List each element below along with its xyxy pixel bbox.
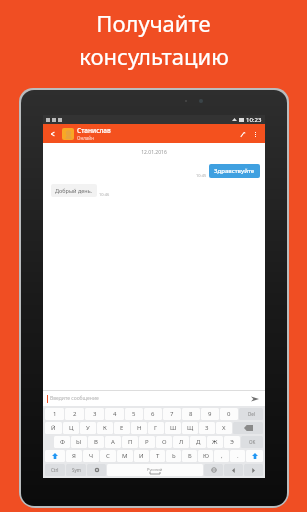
button[interactable]: Л — [173, 436, 189, 448]
button[interactable]: Т — [150, 450, 165, 462]
staticText: П — [128, 438, 133, 446]
button[interactable]: OK — [241, 436, 263, 448]
button[interactable]: Del — [239, 408, 263, 420]
button[interactable]: Shift — [246, 450, 263, 462]
button[interactable]: Ч — [83, 450, 99, 462]
staticText: Del — [248, 411, 255, 417]
button[interactable]: Ф — [54, 436, 70, 448]
button[interactable]: М — [117, 450, 133, 462]
staticText: Н — [137, 424, 142, 432]
button[interactable]: 8 — [182, 408, 200, 420]
staticText: 6 — [151, 410, 155, 418]
button[interactable]: Attach — [235, 127, 249, 141]
staticText: З — [205, 424, 209, 432]
button[interactable]: Й — [45, 422, 62, 434]
button[interactable]: Щ — [182, 422, 198, 434]
staticText: Ч — [89, 452, 94, 460]
button[interactable]: К — [97, 422, 113, 434]
button[interactable]: Б — [182, 450, 197, 462]
button[interactable]: Д — [190, 436, 206, 448]
button[interactable]: Е — [114, 422, 130, 434]
button[interactable]: Ж — [207, 436, 223, 448]
staticText: А — [111, 438, 115, 446]
button[interactable]: Backspace — [233, 422, 263, 434]
button[interactable]: 2 — [65, 408, 84, 420]
button[interactable]: Settings — [87, 464, 106, 476]
button[interactable]: Sym — [66, 464, 86, 476]
staticText: К — [103, 424, 107, 432]
button[interactable]: . — [230, 450, 245, 462]
staticText: Ctrl — [51, 467, 59, 473]
button[interactable]: More options — [249, 128, 261, 140]
button[interactable]: С — [100, 450, 116, 462]
staticText: 4 — [113, 410, 117, 418]
staticText: Д — [196, 438, 201, 446]
staticText: Русский — [147, 467, 163, 472]
button[interactable]: Change language — [204, 464, 223, 476]
button[interactable]: Send — [249, 393, 261, 405]
staticText: Л — [179, 438, 184, 446]
button[interactable]: 9 — [201, 408, 219, 420]
staticText: 8 — [189, 410, 193, 418]
staticText: В — [94, 438, 98, 446]
staticText: Введите сообщение — [50, 395, 99, 402]
staticText: 10:46 — [99, 192, 110, 197]
button[interactable]: 6 — [144, 408, 162, 420]
button[interactable]: Р — [139, 436, 155, 448]
staticText: 1 — [53, 410, 57, 418]
button[interactable]: 0 — [220, 408, 238, 420]
staticText: 2 — [73, 410, 77, 418]
button[interactable]: Ш — [165, 422, 181, 434]
button[interactable]: О — [156, 436, 172, 448]
staticText: Й — [51, 424, 56, 432]
staticText: Э — [230, 438, 234, 446]
button[interactable]: У — [80, 422, 96, 434]
button[interactable]: Э — [224, 436, 240, 448]
button[interactable]: , — [214, 450, 229, 462]
button[interactable]: Left — [224, 464, 243, 476]
staticText: 10:45 — [196, 173, 207, 178]
staticText: 7 — [170, 410, 174, 418]
staticText: 3 — [93, 410, 97, 418]
button[interactable]: 3 — [85, 408, 104, 420]
button[interactable]: 7 — [163, 408, 181, 420]
staticText: Онлайн — [77, 135, 94, 141]
button[interactable]: Н — [131, 422, 147, 434]
button[interactable]: А — [105, 436, 121, 448]
staticText: И — [139, 452, 144, 460]
staticText: . — [237, 452, 239, 460]
staticText: Ж — [212, 438, 218, 446]
button[interactable]: 1 — [45, 408, 64, 420]
button[interactable]: Х — [216, 422, 232, 434]
button[interactable]: Ь — [166, 450, 181, 462]
button[interactable]: Я — [66, 450, 82, 462]
button[interactable]: Ю — [198, 450, 213, 462]
button[interactable]: З — [199, 422, 215, 434]
staticText: Ф — [60, 438, 65, 446]
staticText: 5 — [132, 410, 136, 418]
staticText: Б — [188, 452, 192, 460]
staticText: Е — [120, 424, 124, 432]
button[interactable]: Здравствуйте — [214, 167, 255, 175]
staticText: Ю — [203, 452, 209, 460]
staticText: Х — [222, 424, 226, 432]
button[interactable]: 5 — [125, 408, 143, 420]
button[interactable]: Ы — [71, 436, 87, 448]
staticText: Sym — [72, 467, 81, 473]
button[interactable]: Ctrl — [45, 464, 65, 476]
button[interactable]: Г — [148, 422, 164, 434]
button[interactable]: Space — [107, 464, 203, 476]
button[interactable]: Введите сообщение — [50, 395, 249, 402]
button[interactable]: Right — [244, 464, 263, 476]
button[interactable]: Ц — [63, 422, 79, 434]
button[interactable]: И — [134, 450, 149, 462]
button[interactable]: 4 — [105, 408, 124, 420]
button[interactable]: В — [88, 436, 104, 448]
staticText: OK — [249, 439, 256, 445]
staticText: Я — [72, 452, 76, 460]
button[interactable]: Shift — [45, 450, 65, 462]
button[interactable]: Добрый день. — [55, 187, 93, 194]
button[interactable]: Back — [47, 128, 59, 140]
button[interactable]: П — [122, 436, 138, 448]
staticText: Станислав — [77, 126, 111, 135]
